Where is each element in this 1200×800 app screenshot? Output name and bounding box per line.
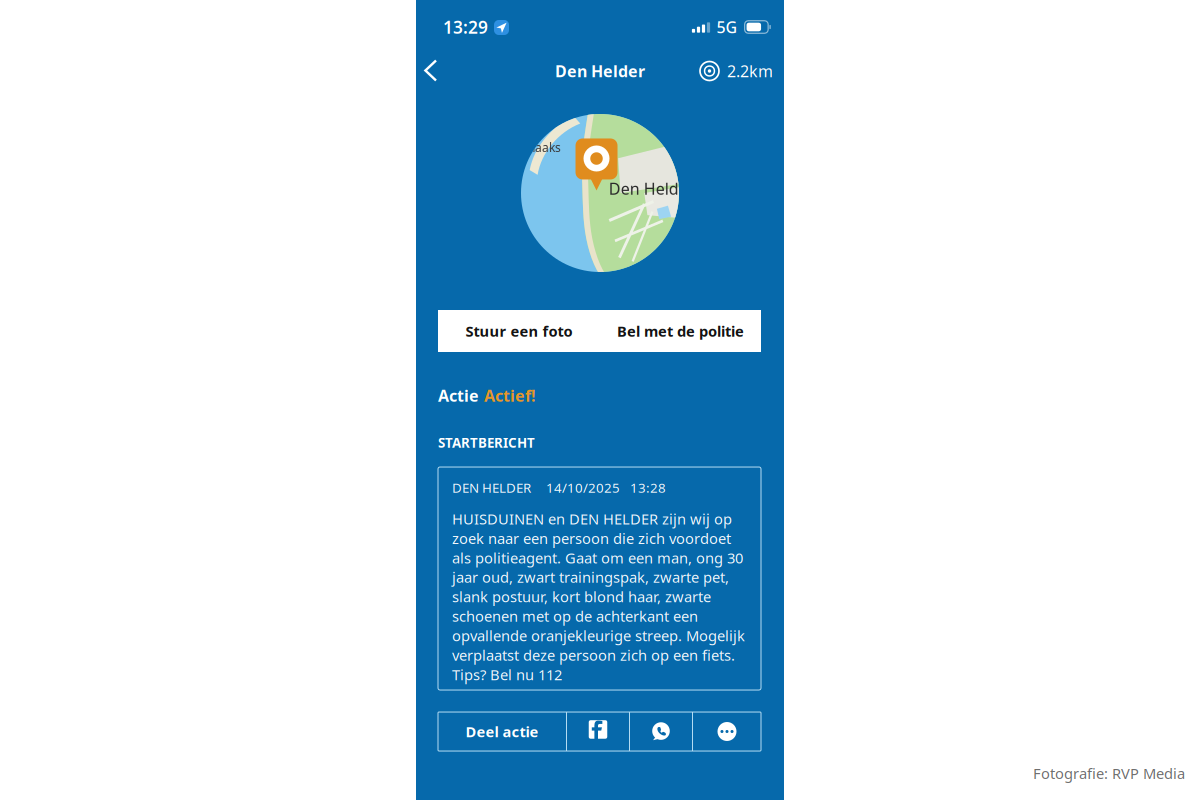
staticText: STARTBERICHT	[438, 434, 535, 451]
button[interactable]: Bel met de politie	[600, 310, 761, 352]
button[interactable]: Distance 2.2 km	[700, 49, 784, 93]
staticText: Deel actie	[465, 722, 538, 741]
staticText: Fotografie: RVP Media	[1033, 763, 1185, 783]
staticText: Actie	[438, 385, 479, 406]
button[interactable]: Deel actie	[438, 712, 566, 751]
staticText: 13:29	[443, 15, 488, 38]
staticText: Actief!	[484, 385, 536, 406]
button[interactable]: Stuur een foto	[438, 310, 600, 352]
staticText: HUISDUINEN en DEN HELDER zijn wij op zoe…	[452, 509, 745, 684]
staticText: 14/10/2025	[546, 479, 620, 496]
button[interactable]: Back	[416, 49, 452, 93]
staticText: 13:28	[630, 479, 666, 496]
staticText: haaks	[528, 139, 561, 155]
staticText: 5G	[716, 16, 737, 38]
staticText: Den Helder	[609, 178, 695, 199]
button[interactable]: More share options	[693, 712, 761, 751]
staticText: Stuur een foto	[465, 321, 572, 341]
button[interactable]: Share on WhatsApp	[630, 712, 692, 751]
staticText: Bel met de politie	[617, 321, 744, 341]
button[interactable]: Share on Facebook	[567, 712, 629, 751]
staticText: DEN HELDER	[452, 479, 531, 496]
staticText: Den Helder	[555, 60, 645, 82]
staticText: 2.2km	[727, 60, 773, 82]
